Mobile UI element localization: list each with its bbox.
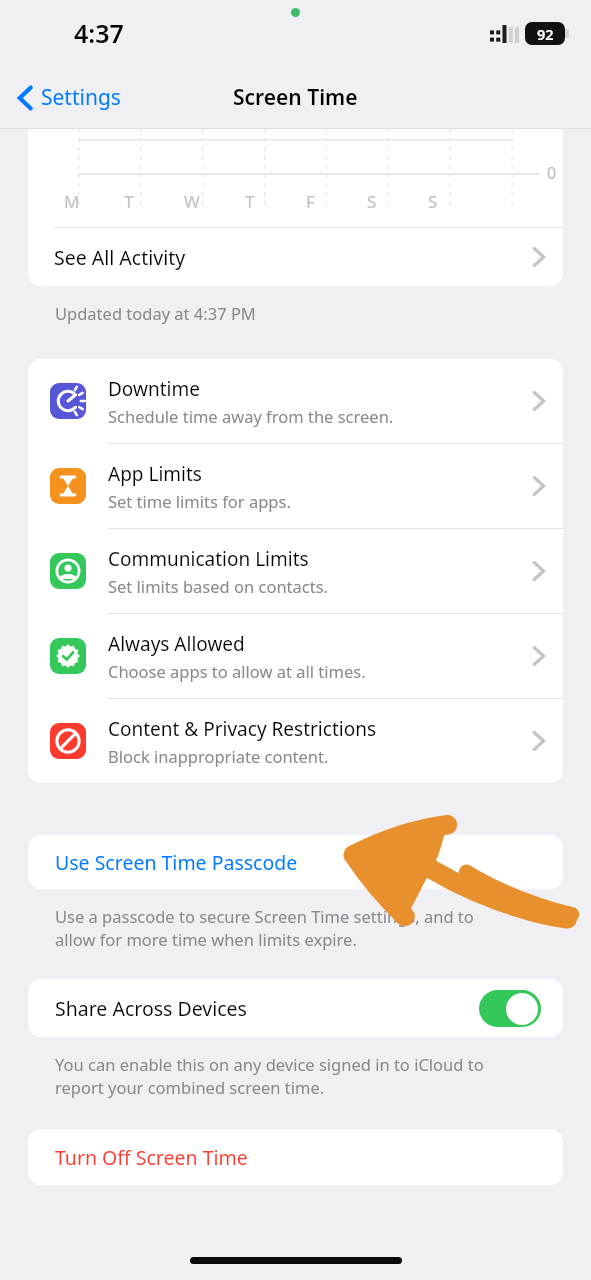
staticText: Block inappropriate content. [108, 745, 329, 767]
button[interactable]: Share Across Devices [28, 979, 563, 1037]
staticText: Settings [41, 83, 121, 112]
button[interactable]: Turn Off Screen Time [28, 1129, 563, 1185]
button[interactable]: Use Screen Time Passcode [28, 835, 563, 889]
button[interactable]: See All Activity [28, 228, 563, 286]
button[interactable]: Settings [10, 77, 129, 118]
button[interactable]: Content & Privacy Restrictions [28, 699, 563, 783]
staticText: Downtime [108, 376, 200, 402]
button[interactable]: Always Allowed [28, 614, 563, 699]
staticText: Always Allowed [108, 631, 245, 657]
staticText: Share Across Devices [55, 995, 479, 1022]
staticText: F [306, 190, 315, 213]
staticText: T [124, 190, 134, 213]
staticText: Content & Privacy Restrictions [108, 716, 376, 742]
staticText: T [245, 190, 255, 213]
button[interactable]: Communication Limits [28, 529, 563, 614]
staticText: App Limits [108, 461, 202, 487]
staticText: Schedule time away from the screen. [108, 405, 394, 427]
staticText: Screen Time [233, 83, 358, 112]
button[interactable]: Downtime [28, 359, 563, 444]
other: Annotation arrow pointing to Use Screen … [344, 818, 579, 930]
button[interactable]: App Limits [28, 444, 563, 529]
staticText: Set time limits for apps. [108, 490, 291, 512]
staticText: 0 [547, 162, 557, 184]
staticText: Choose apps to allow at all times. [108, 660, 366, 682]
staticText: M [64, 190, 80, 213]
staticText: S [428, 190, 438, 213]
staticText: Turn Off Screen Time [55, 1144, 248, 1171]
staticText: Communication Limits [108, 546, 309, 572]
staticText: You can enable this on any device signed… [55, 1053, 484, 1099]
staticText: Use a passcode to secure Screen Time set… [55, 905, 474, 951]
staticText: W [184, 190, 200, 213]
staticText: Use Screen Time Passcode [55, 849, 298, 876]
staticText: Set limits based on contacts. [108, 575, 328, 597]
staticText: 4:37 [74, 16, 124, 50]
staticText: Updated today at 4:37 PM [55, 302, 256, 324]
staticText: 92 [537, 24, 554, 44]
staticText: S [367, 190, 377, 213]
staticText: See All Activity [54, 244, 529, 271]
